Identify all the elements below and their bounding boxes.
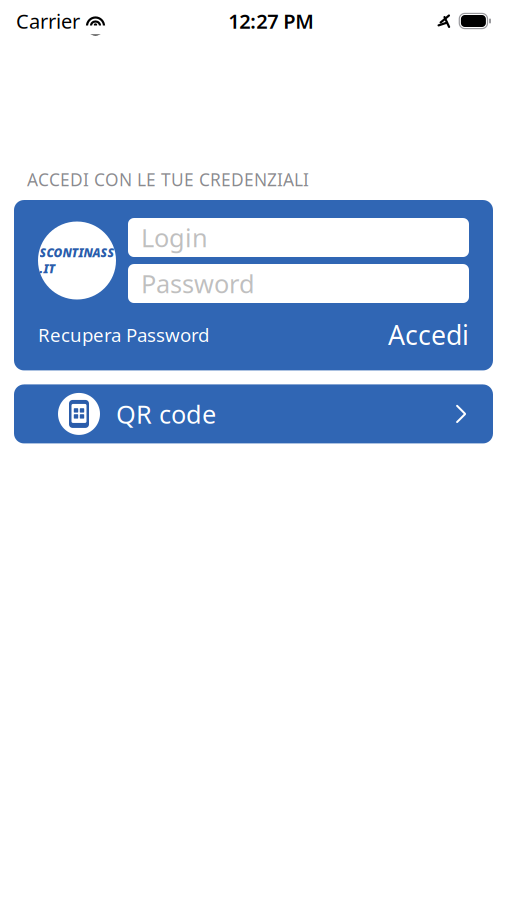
button[interactable]: Password: [128, 264, 469, 303]
staticText: Login: [141, 221, 208, 254]
button[interactable]: QR code: [14, 384, 493, 443]
button[interactable]: Accedi: [388, 313, 469, 356]
staticText: Password: [141, 267, 255, 300]
staticText: Recupera Password: [38, 322, 209, 347]
staticText: Accedi: [388, 317, 469, 352]
staticText: 12:27 PM: [228, 8, 314, 34]
staticText: Carrier: [16, 8, 80, 34]
staticText: SCONTINASS.IT: [39, 245, 114, 276]
staticText: QR code: [116, 397, 216, 431]
button[interactable]: Recupera Password: [38, 316, 209, 353]
button[interactable]: Login: [128, 218, 469, 257]
staticText: ACCEDI CON LE TUE CREDENZIALI: [27, 168, 309, 191]
